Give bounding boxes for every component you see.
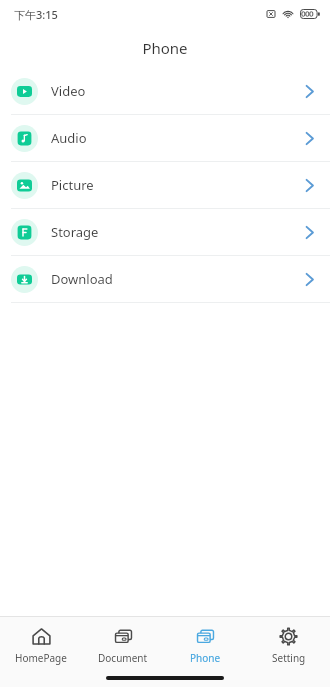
staticText: Audio <box>51 129 87 147</box>
button[interactable]: Setting <box>247 621 330 665</box>
staticText: Phone <box>190 651 221 665</box>
staticText: Video <box>51 82 86 100</box>
button[interactable]: Document <box>82 621 164 665</box>
staticText: Setting <box>272 651 306 665</box>
staticText: Phone <box>142 38 188 58</box>
staticText: Picture <box>51 176 94 194</box>
staticText: HomePage <box>15 651 67 665</box>
button[interactable]: Picture <box>0 162 330 208</box>
button[interactable]: Video <box>0 68 330 114</box>
button[interactable]: HomePage <box>0 621 82 665</box>
staticText: Storage <box>51 223 99 241</box>
button[interactable]: Audio <box>0 115 330 161</box>
button[interactable]: Phone <box>164 621 247 665</box>
button[interactable]: Download <box>0 256 330 302</box>
button[interactable]: Storage <box>0 209 330 255</box>
staticText: 下午3:15 <box>14 7 58 22</box>
staticText: Document <box>98 651 148 665</box>
staticText: Download <box>51 270 113 288</box>
